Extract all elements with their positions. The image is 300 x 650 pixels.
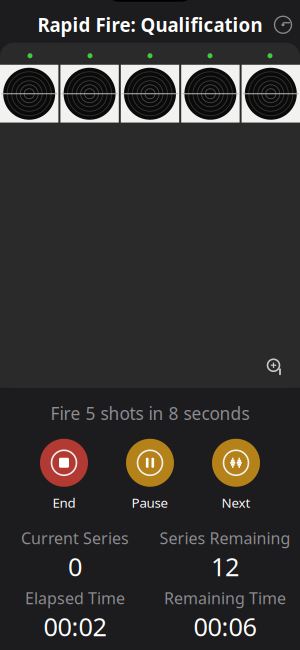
button[interactable]: Settings (266, 10, 300, 40)
staticText: 00:02 (43, 610, 106, 643)
staticText: Series Remaining (159, 527, 290, 549)
staticText: Pause (131, 494, 168, 511)
staticText: 12 (211, 550, 239, 583)
staticText: Current Series (21, 527, 129, 549)
staticText: Elapsed Time (25, 587, 125, 609)
staticText: Remaining Time (164, 587, 286, 609)
staticText: Next (221, 494, 250, 511)
button[interactable]: Pause (119, 437, 181, 511)
button[interactable]: End (33, 437, 95, 511)
staticText: 00:06 (193, 610, 256, 643)
button[interactable]: Next (205, 437, 267, 511)
staticText: Fire 5 shots in 8 seconds (50, 402, 249, 425)
staticText: End (52, 494, 75, 511)
staticText: Rapid Fire: Qualification (37, 12, 262, 37)
staticText: 0 (68, 550, 82, 583)
button[interactable]: Zoom in (260, 352, 290, 382)
